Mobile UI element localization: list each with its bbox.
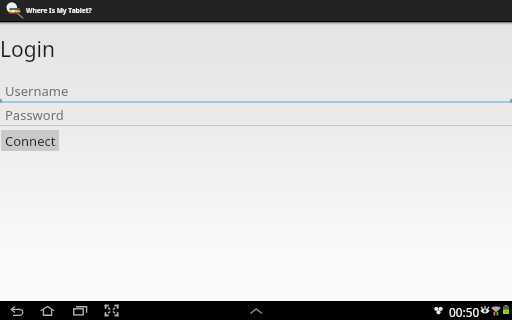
button[interactable]: Connect [1,130,59,151]
other: Battery [503,305,509,314]
staticText: Connect [5,132,56,150]
button[interactable]: Back [9,302,26,319]
other: Screen watcher active [480,305,490,315]
staticText: Login [0,35,56,64]
staticText: Password [5,106,64,124]
button[interactable]: Username [0,80,512,103]
button[interactable]: Show notifications [248,305,264,316]
button[interactable]: Screenshot [103,302,120,319]
button[interactable]: Home [39,302,56,319]
staticText: Where Is My Tablet? [26,6,92,15]
staticText: Username [5,82,69,100]
other: Wi-Fi connected [491,305,501,316]
button[interactable]: Dropbox [434,306,443,315]
button[interactable]: Password [0,104,512,127]
button[interactable]: Recent apps [72,302,89,319]
staticText: 00:50 [449,304,480,320]
